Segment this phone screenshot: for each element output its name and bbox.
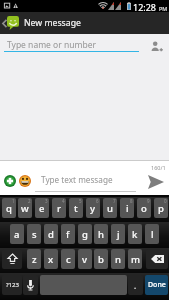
staticText: PM xyxy=(159,5,168,12)
staticText: 2 xyxy=(28,198,31,204)
staticText: e xyxy=(39,202,45,215)
staticText: New message xyxy=(24,17,81,29)
button[interactable]: Done xyxy=(145,275,168,295)
button[interactable]: w xyxy=(18,198,32,218)
staticText: x xyxy=(48,253,54,266)
button[interactable]: Shift xyxy=(2,249,22,269)
button[interactable]: c xyxy=(61,249,75,269)
button[interactable]: u xyxy=(103,198,117,218)
staticText: Type text message xyxy=(41,174,113,185)
button[interactable]: j xyxy=(111,224,125,244)
button[interactable]: s xyxy=(27,224,41,244)
staticText: g xyxy=(82,228,88,241)
staticText: f xyxy=(66,228,70,241)
staticText: 7 xyxy=(113,198,116,204)
staticText: Type name or number xyxy=(7,39,96,51)
button[interactable]: z xyxy=(27,249,41,269)
button[interactable]: Type text message xyxy=(35,170,136,192)
staticText: t xyxy=(74,202,78,215)
staticText: 8 xyxy=(130,198,133,204)
staticText: o xyxy=(141,202,147,215)
button[interactable]: v xyxy=(78,249,92,269)
staticText: 6 xyxy=(96,198,99,204)
button[interactable]: q xyxy=(2,198,16,218)
button[interactable]: Type name or number xyxy=(4,36,139,56)
staticText: 5 xyxy=(79,198,82,204)
button[interactable]: y xyxy=(86,198,100,218)
staticText: q xyxy=(6,202,12,215)
staticText: k xyxy=(132,228,138,241)
staticText: w xyxy=(21,202,29,215)
staticText: r xyxy=(57,202,62,215)
staticText: n xyxy=(115,253,121,266)
button[interactable]: n xyxy=(111,249,125,269)
staticText: b xyxy=(98,253,104,266)
staticText: 4 xyxy=(62,198,65,204)
staticText: d xyxy=(48,228,54,241)
button[interactable]: t xyxy=(69,198,83,218)
button[interactable]: Delete xyxy=(146,249,168,269)
staticText: ?123 xyxy=(6,281,19,289)
staticText: h xyxy=(98,228,104,241)
button[interactable]: Add contact xyxy=(144,34,169,58)
button[interactable]: ?123 xyxy=(2,275,22,295)
staticText: a xyxy=(14,228,20,241)
button[interactable]: b xyxy=(94,249,108,269)
staticText: p xyxy=(158,202,164,215)
staticText: y xyxy=(90,202,96,215)
staticText: s xyxy=(32,228,37,241)
button[interactable]: g xyxy=(78,224,92,244)
button[interactable]: Add attachment xyxy=(2,173,18,189)
staticText: 9 xyxy=(147,198,150,204)
button[interactable]: m xyxy=(128,249,142,269)
button[interactable]: k xyxy=(128,224,142,244)
button[interactable]: e xyxy=(35,198,49,218)
staticText: 0 xyxy=(164,198,167,204)
staticText: u xyxy=(107,202,113,215)
button[interactable]: r xyxy=(52,198,66,218)
button[interactable]: a xyxy=(10,224,24,244)
button[interactable]: h xyxy=(94,224,108,244)
button[interactable]: Navigate up xyxy=(0,12,21,34)
button[interactable]: l xyxy=(145,224,159,244)
staticText: 12:28 xyxy=(133,1,157,13)
button[interactable]: i xyxy=(120,198,134,218)
button[interactable]: d xyxy=(44,224,58,244)
button[interactable]: Insert emoji xyxy=(17,173,33,189)
button[interactable]: x xyxy=(44,249,58,269)
staticText: i xyxy=(126,202,129,215)
staticText: Done xyxy=(148,280,166,290)
staticText: z xyxy=(32,253,37,266)
staticText: l xyxy=(151,228,154,241)
staticText: 3 xyxy=(45,198,48,204)
staticText: j xyxy=(117,228,120,241)
button[interactable]: o xyxy=(137,198,151,218)
staticText: c xyxy=(66,253,71,266)
button[interactable]: f xyxy=(61,224,75,244)
button[interactable]: Voice input xyxy=(23,275,38,295)
button[interactable]: . xyxy=(128,275,143,295)
button[interactable]: Send xyxy=(142,171,169,193)
staticText: 1 xyxy=(12,198,15,204)
staticText: m xyxy=(131,253,140,266)
staticText: 160/1 xyxy=(151,164,166,171)
staticText: . xyxy=(134,280,137,291)
staticText: v xyxy=(82,253,88,266)
button[interactable]: p xyxy=(154,198,168,218)
